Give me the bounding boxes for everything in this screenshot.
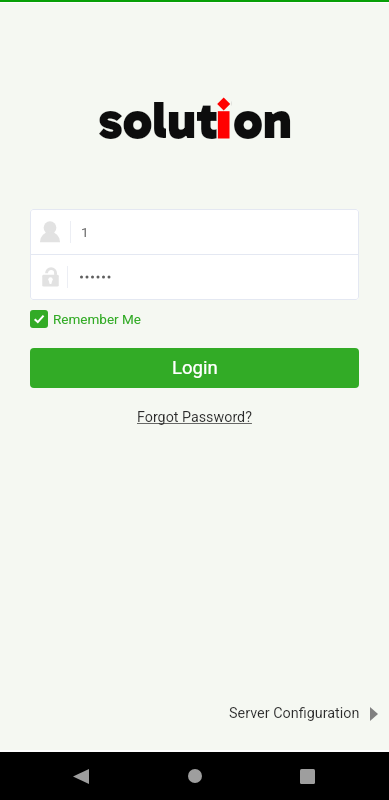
staticText: Remember Me bbox=[53, 311, 141, 327]
button[interactable]: Login bbox=[30, 348, 359, 388]
staticText: solution bbox=[98, 88, 292, 152]
staticText: Login bbox=[172, 357, 218, 379]
staticText: Server Configuration bbox=[229, 705, 360, 722]
button[interactable] bbox=[30, 255, 359, 298]
button[interactable]: Server Configuration bbox=[229, 705, 378, 722]
button[interactable]: Home bbox=[151, 752, 239, 800]
button[interactable]: Remember Me bbox=[30, 310, 141, 328]
staticText: 1 bbox=[81, 224, 89, 240]
button[interactable]: 1 bbox=[30, 209, 359, 254]
button[interactable]: Back bbox=[37, 752, 125, 800]
button[interactable]: Recents bbox=[263, 752, 351, 800]
button[interactable]: Forgot Password? bbox=[137, 409, 252, 426]
